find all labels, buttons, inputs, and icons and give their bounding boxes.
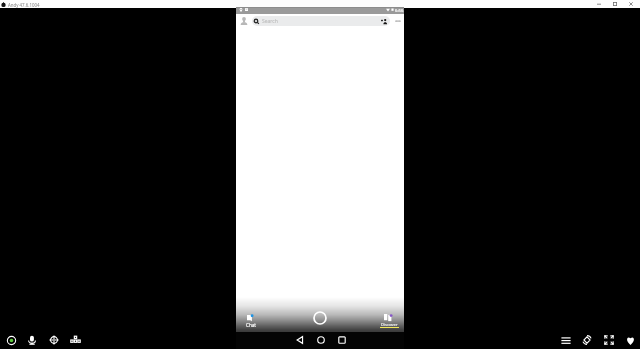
button[interactable]: Maximize — [607, 0, 623, 8]
button[interactable]: Location — [47, 333, 61, 347]
button[interactable]: Minimize — [591, 0, 607, 8]
button[interactable]: Recents — [335, 333, 348, 346]
button[interactable]: Menu — [559, 333, 573, 347]
staticText: 6:56 — [395, 8, 404, 14]
button[interactable]: Home — [314, 333, 327, 346]
staticText: Search — [262, 18, 278, 25]
button[interactable]: Close — [623, 0, 639, 8]
button[interactable]: Chat — [244, 313, 257, 333]
button[interactable]: Back — [293, 333, 306, 346]
button[interactable]: Favorite — [623, 333, 637, 347]
staticText: Andy 47.6.1004 — [8, 2, 40, 8]
button[interactable]: Add friend — [380, 17, 388, 25]
button[interactable]: Discover — [379, 313, 400, 333]
staticText: Chat — [246, 322, 256, 328]
button[interactable]: Search — [252, 16, 390, 26]
button[interactable]: Microphone — [25, 333, 39, 347]
button[interactable]: Apps — [68, 333, 82, 347]
button[interactable]: Profile — [238, 15, 250, 27]
button[interactable]: Rotate — [580, 333, 594, 347]
staticText: Discover — [381, 322, 398, 328]
button[interactable]: More options — [393, 16, 402, 25]
button[interactable]: Fullscreen — [602, 333, 616, 347]
button[interactable]: Power — [4, 333, 18, 347]
button[interactable]: Capture — [313, 311, 327, 325]
